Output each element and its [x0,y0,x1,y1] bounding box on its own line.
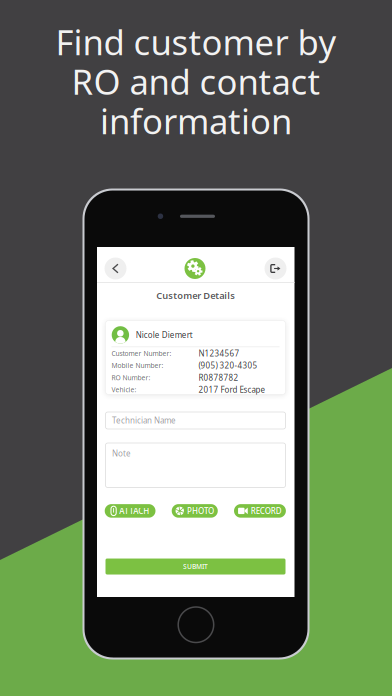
button[interactable]: PHOTO [172,504,218,518]
staticText: Vehicle: [111,385,136,394]
staticText: Find customer by [55,19,336,65]
staticText: Note [112,448,131,459]
staticText: Customer Details [156,289,235,302]
staticText: information [100,98,292,144]
staticText: SUBMIT [183,562,208,571]
staticText: RO Number: [111,373,150,382]
staticText: RECORD [251,506,282,516]
staticText: R0878782 [198,372,238,383]
staticText: ATTACH [119,506,149,516]
staticText: Nicole Diemert [136,330,193,340]
button[interactable]: RECORD [234,504,286,518]
staticText: Technician Name [112,415,176,426]
staticText: (905) 320-4305 [198,360,257,371]
button[interactable]: ATTACH [105,504,155,518]
button[interactable]: Log out [264,257,286,279]
staticText: Customer Number: [111,349,171,358]
staticText: N1234567 [198,348,239,359]
button[interactable]: Back [104,257,126,279]
staticText: 2017 Ford Escape [198,384,265,395]
staticText: RO and contact [71,58,320,104]
staticText: Mobile Number: [111,361,163,370]
button[interactable]: SUBMIT [105,558,285,574]
staticText: PHOTO [187,506,214,516]
